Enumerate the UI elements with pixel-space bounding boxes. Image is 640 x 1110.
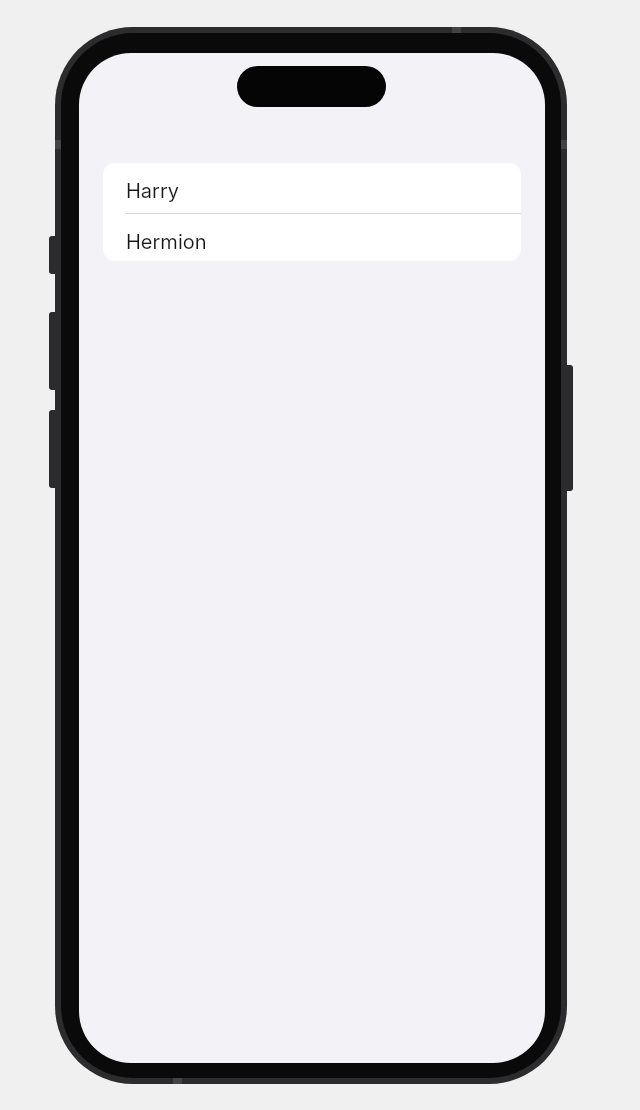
- staticText: Harry: [126, 179, 180, 203]
- button[interactable]: Harry: [103, 163, 521, 213]
- staticText: Hermion: [126, 230, 207, 254]
- button[interactable]: Hermion: [103, 214, 521, 261]
